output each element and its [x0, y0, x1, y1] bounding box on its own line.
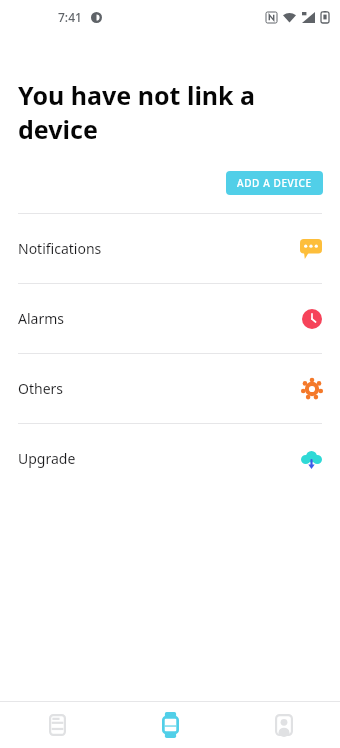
button[interactable]: Notifications [0, 214, 340, 283]
staticText: Notifications [18, 239, 102, 258]
staticText: Others [18, 379, 64, 398]
staticText: Alarms [18, 309, 64, 328]
staticText: 7:41 [58, 9, 82, 25]
button[interactable]: Alarms [0, 284, 340, 353]
button[interactable]: Upgrade [0, 424, 340, 493]
button[interactable]: Others [0, 354, 340, 423]
staticText: You have not link a device [18, 78, 256, 146]
staticText: Upgrade [18, 449, 76, 468]
staticText: ADD A DEVICE [237, 176, 312, 190]
button[interactable]: Profile [227, 702, 340, 748]
button[interactable]: Device [114, 702, 227, 748]
button[interactable]: ADD A DEVICE [226, 171, 323, 195]
button[interactable]: Records [0, 702, 114, 748]
